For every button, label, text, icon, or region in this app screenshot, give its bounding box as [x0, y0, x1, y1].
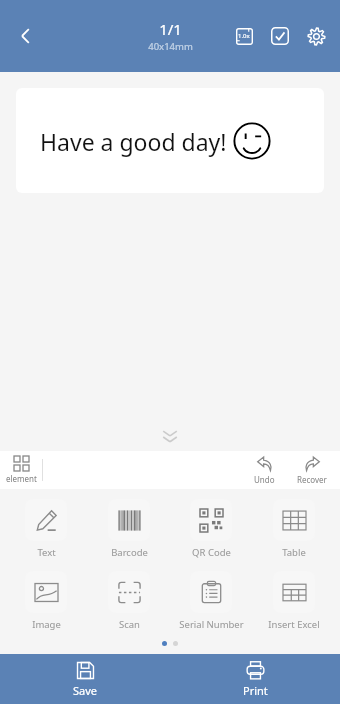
button[interactable]: Serial Number	[174, 571, 248, 631]
staticText: Recover	[297, 474, 327, 485]
staticText: 1/1	[159, 19, 182, 39]
button[interactable]: Print	[170, 654, 340, 704]
button[interactable]: Select all	[262, 18, 298, 54]
staticText: Barcode	[111, 546, 148, 559]
staticText: 1.0x	[238, 32, 250, 40]
button[interactable]: element	[0, 451, 42, 489]
button[interactable]: Text	[9, 499, 83, 559]
button[interactable]: Save	[0, 654, 170, 704]
staticText: element	[6, 473, 37, 484]
staticText: Save	[73, 683, 98, 698]
staticText: QR Code	[192, 546, 231, 559]
button[interactable]: Have a good day!	[16, 88, 324, 193]
button[interactable]: Recover	[292, 451, 332, 489]
staticText: Text	[37, 546, 56, 559]
button[interactable]: Insert Excel	[257, 571, 331, 631]
staticText: Insert Excel	[268, 618, 320, 631]
staticText: Scan	[119, 618, 140, 631]
staticText: Have a good day!	[40, 126, 227, 157]
button[interactable]: Settings	[298, 18, 334, 54]
staticText: Undo	[254, 474, 275, 485]
staticText: Serial Number	[179, 618, 244, 631]
button[interactable]: Table	[257, 499, 331, 559]
button[interactable]: Collapse	[150, 427, 190, 447]
staticText: Print	[243, 683, 268, 698]
button[interactable]: Undo	[244, 451, 284, 489]
staticText: Image	[32, 618, 61, 631]
button[interactable]: Scan	[92, 571, 166, 631]
staticText: Table	[282, 546, 306, 559]
button[interactable]: Image	[9, 571, 83, 631]
staticText: 40x14mm	[148, 40, 193, 53]
button[interactable]: Zoom 1.0x	[226, 18, 262, 54]
button[interactable]: Barcode	[92, 499, 166, 559]
button[interactable]: QR Code	[174, 499, 248, 559]
button[interactable]: Back	[4, 14, 48, 58]
